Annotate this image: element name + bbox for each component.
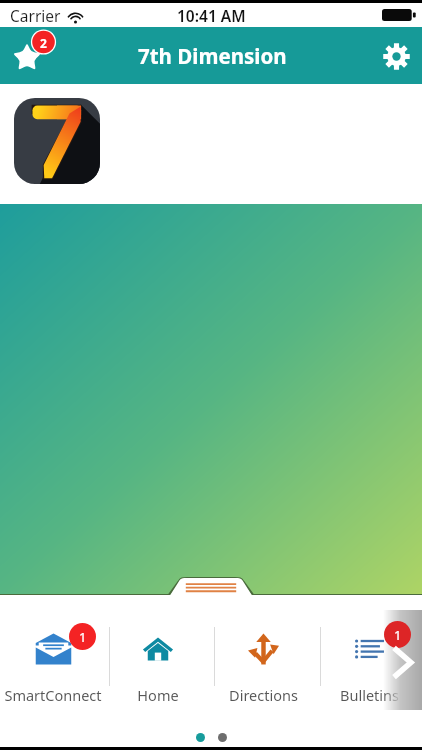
button[interactable]: Bulletins <box>316 595 422 700</box>
button[interactable]: App logo <box>14 98 100 184</box>
staticText: 2 <box>40 35 47 51</box>
staticText: Home <box>137 685 179 705</box>
staticText: 1 <box>394 626 402 644</box>
button[interactable]: Directions <box>210 595 316 700</box>
button[interactable]: Settings <box>370 30 422 82</box>
staticText: Bulletins <box>340 685 399 705</box>
button[interactable]: Next page <box>383 610 422 710</box>
staticText: SmartConnect <box>4 685 102 705</box>
staticText: Directions <box>229 685 298 705</box>
other: Next page arrow <box>392 646 412 679</box>
button[interactable]: Favorites <box>0 27 62 84</box>
staticText: 10:41 AM <box>177 5 246 26</box>
staticText: 1 <box>79 628 87 646</box>
staticText: Carrier <box>10 5 61 26</box>
staticText: 7th Dimension <box>138 42 287 70</box>
button[interactable]: Home <box>105 595 210 700</box>
button[interactable]: 1 <box>0 595 105 700</box>
